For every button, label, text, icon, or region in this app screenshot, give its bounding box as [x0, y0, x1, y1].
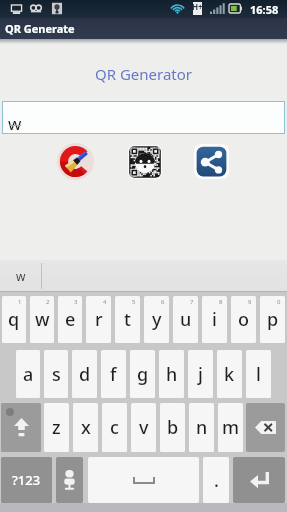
staticText: t	[124, 307, 131, 332]
staticText: r	[95, 307, 103, 332]
button[interactable]: e	[58, 296, 82, 343]
button[interactable]: w	[30, 296, 54, 343]
button[interactable]: Share	[194, 144, 229, 179]
staticText: v	[139, 415, 149, 440]
staticText: H+	[192, 1, 203, 12]
staticText: 2	[46, 298, 50, 306]
staticText: 9	[248, 298, 252, 306]
staticText: y	[152, 307, 162, 332]
staticText: QR Generate	[5, 21, 75, 36]
staticText: 1	[18, 298, 22, 306]
staticText: 4	[103, 298, 107, 306]
button[interactable]: Shift	[1, 403, 41, 452]
button[interactable]: Enter	[233, 457, 285, 503]
button[interactable]: q	[2, 296, 26, 343]
button[interactable]: u	[173, 296, 198, 343]
button[interactable]: x	[73, 403, 98, 452]
staticText: QR Generator	[0, 64, 287, 84]
button[interactable]: m	[218, 403, 243, 452]
staticText: f	[110, 362, 117, 387]
button[interactable]: h	[159, 350, 184, 398]
button[interactable]: w	[2, 101, 285, 134]
staticText: ?123	[12, 471, 41, 489]
staticText: w	[16, 268, 26, 284]
button[interactable]: a	[16, 350, 40, 398]
staticText: x	[81, 415, 91, 440]
staticText: b	[167, 415, 179, 440]
staticText: k	[224, 362, 235, 387]
staticText: q	[8, 307, 20, 332]
staticText: p	[267, 307, 279, 332]
button[interactable]: b	[160, 403, 185, 452]
button[interactable]: c	[102, 403, 127, 452]
staticText: .	[214, 468, 219, 493]
button[interactable]: f	[101, 350, 126, 398]
button[interactable]: QR Droid	[128, 145, 162, 179]
staticText: a	[23, 362, 34, 387]
staticText: 3	[74, 298, 78, 306]
button[interactable]: d	[72, 350, 97, 398]
staticText: 0	[277, 298, 281, 306]
button[interactable]: CCleaner	[56, 142, 95, 181]
staticText: g	[137, 362, 149, 387]
button[interactable]: l	[246, 350, 271, 398]
staticText: o	[238, 307, 249, 332]
staticText: z	[52, 415, 61, 440]
button[interactable]: j	[188, 350, 213, 398]
staticText: w	[35, 307, 50, 332]
button[interactable]: ?123	[1, 457, 52, 503]
button[interactable]: y	[144, 296, 169, 343]
staticText: d	[79, 362, 91, 387]
button[interactable]: v	[131, 403, 156, 452]
button[interactable]: r	[86, 296, 111, 343]
staticText: 16:58	[250, 2, 279, 17]
button[interactable]: Voice input	[56, 457, 83, 503]
staticText: 6	[161, 298, 165, 306]
button[interactable]: z	[44, 403, 69, 452]
staticText: m	[222, 415, 240, 440]
button[interactable]: w	[0, 260, 41, 292]
staticText: e	[65, 307, 76, 332]
staticText: s	[52, 362, 61, 387]
staticText: 5	[132, 298, 136, 306]
button[interactable]: i	[202, 296, 227, 343]
button[interactable]: t	[115, 296, 140, 343]
button[interactable]: Space	[88, 457, 199, 503]
staticText: i	[212, 307, 217, 332]
button[interactable]: k	[217, 350, 242, 398]
staticText: n	[196, 415, 208, 440]
button[interactable]: o	[231, 296, 256, 343]
button[interactable]: s	[44, 350, 68, 398]
staticText: l	[256, 362, 261, 387]
button[interactable]: Backspace	[246, 403, 285, 452]
button[interactable]: .	[203, 457, 229, 503]
staticText: j	[198, 362, 203, 387]
staticText: 7	[190, 298, 194, 306]
staticText: u	[180, 307, 192, 332]
button[interactable]: n	[189, 403, 214, 452]
staticText: w	[8, 112, 22, 135]
staticText: 8	[219, 298, 223, 306]
staticText: h	[166, 362, 178, 387]
button[interactable]: p	[260, 296, 285, 343]
button[interactable]: g	[130, 350, 155, 398]
staticText: c	[110, 415, 119, 440]
